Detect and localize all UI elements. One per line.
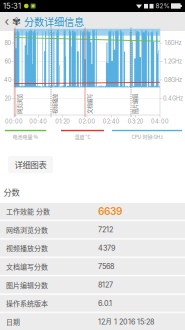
staticText: 00:40 <box>29 118 47 125</box>
button[interactable]: Back <box>2 12 12 31</box>
staticText: 1.6GHz <box>164 40 181 46</box>
button[interactable]: 详细图表 <box>8 156 53 173</box>
staticText: 03:20 <box>128 118 144 125</box>
staticText: 60 <box>4 58 11 65</box>
staticText: 82% <box>155 2 169 10</box>
staticText: 网络浏览分数 <box>6 225 48 235</box>
staticText: 文档编写 <box>79 100 99 108</box>
staticText: 温度 °C <box>74 133 90 140</box>
staticText: 0.4GHz <box>163 95 183 102</box>
staticText: 操作系统版本 <box>6 298 48 308</box>
button[interactable]: 视频播放分数 <box>0 240 185 258</box>
staticText: 日期 <box>6 317 20 327</box>
staticText: 视频播放 <box>45 100 65 108</box>
staticText: 02:00 <box>78 118 95 125</box>
staticText: 15:31 <box>3 1 21 11</box>
staticText: 01:20 <box>55 118 70 125</box>
button[interactable]: 文档编写分数 <box>0 258 185 277</box>
staticText: 02:40 <box>103 118 120 125</box>
button[interactable]: 网络浏览分数 <box>0 221 185 240</box>
staticText: 详细图表 <box>14 158 46 170</box>
button[interactable]: 工作效能 分数 <box>0 203 185 221</box>
staticText: CPU 时钟 GHz <box>131 133 162 140</box>
button[interactable]: 图片编辑分数 <box>0 277 185 295</box>
staticText: 04:00 <box>151 118 169 125</box>
staticText: 4379 <box>98 244 115 252</box>
staticText: 1.2GHz <box>164 58 182 65</box>
staticText: 40 <box>4 77 12 83</box>
staticText: 网页浏览 <box>9 100 29 108</box>
staticText: 20 <box>4 95 11 102</box>
staticText: 6.0.1 <box>98 299 112 308</box>
button[interactable]: 日期 <box>0 313 185 330</box>
staticText: 视频播放分数 <box>6 243 48 253</box>
staticText: 7568 <box>98 262 114 271</box>
staticText: 图片编辑分数 <box>6 280 48 290</box>
staticText: 00:00 <box>5 118 23 125</box>
staticText: 文档编写分数 <box>6 261 48 271</box>
staticText: 分数详细信息 <box>24 14 84 29</box>
staticText: 8127 <box>98 280 113 289</box>
staticText: 图片编辑 <box>125 100 145 108</box>
staticText: 80 <box>4 40 11 46</box>
staticText: ✾ <box>12 15 21 28</box>
staticText: 工作效能 分数 <box>6 206 50 216</box>
staticText: 分数 <box>3 186 19 198</box>
staticText: 0.8GHz <box>164 77 182 83</box>
button[interactable]: 操作系统版本 <box>0 295 185 313</box>
staticText: 6639 <box>98 205 122 217</box>
staticText: ‹ <box>4 14 9 29</box>
staticText: 7212 <box>98 225 113 234</box>
staticText: 12月 1 2016 15:28 <box>98 317 154 326</box>
staticText: 电池电量 % <box>12 133 38 140</box>
